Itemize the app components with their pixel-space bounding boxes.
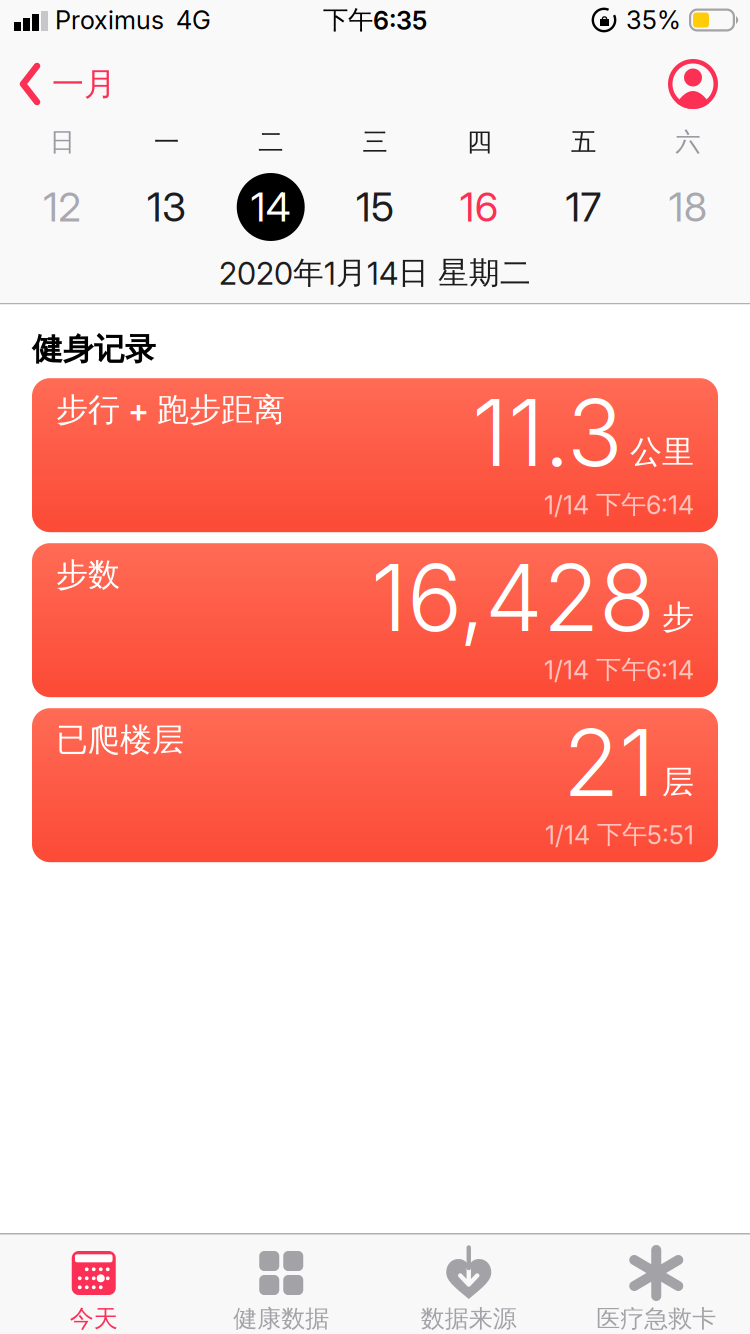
staticText: 数据来源 — [421, 1304, 517, 1333]
button[interactable]: 已爬楼层 — [32, 708, 718, 862]
button[interactable]: 医疗急救卡 — [562, 1233, 750, 1334]
staticText: 三 — [362, 126, 387, 157]
staticText: 五 — [571, 126, 596, 157]
button[interactable]: 步行 + 跑步距离 — [32, 378, 718, 532]
staticText: 下午6:35 — [323, 4, 427, 35]
staticText: 二 — [258, 126, 283, 157]
staticText: 14 — [251, 183, 291, 231]
staticText: 六 — [675, 126, 700, 157]
staticText: 13 — [147, 183, 186, 231]
staticText: 15 — [356, 183, 394, 231]
staticText: 层 — [662, 762, 694, 802]
button[interactable]: 数据来源 — [375, 1233, 562, 1334]
staticText: 步数 — [56, 555, 120, 594]
button[interactable]: 14 — [219, 165, 323, 249]
button[interactable] — [668, 59, 750, 109]
button[interactable]: 12 — [10, 165, 114, 249]
staticText: 1/14 下午6:14 — [544, 654, 694, 685]
button[interactable]: 健康数据 — [187, 1233, 375, 1334]
staticText: 1/14 下午5:51 — [545, 819, 694, 850]
staticText: 一 — [154, 126, 179, 157]
staticText: 17 — [566, 183, 602, 231]
staticText: 12 — [43, 183, 81, 231]
staticText: 21 — [563, 708, 655, 817]
button[interactable]: 步数 — [32, 543, 718, 697]
staticText: 11.3 — [472, 378, 623, 487]
staticText: 16 — [460, 183, 499, 231]
staticText: 步行 + 跑步距离 — [56, 390, 285, 429]
staticText: 今天 — [70, 1304, 118, 1333]
staticText: 16,428 — [371, 543, 655, 652]
staticText: 步 — [662, 597, 694, 637]
staticText: 一月 — [52, 64, 116, 104]
staticText: Proximus — [55, 5, 164, 35]
staticText: 日 — [50, 126, 75, 157]
button[interactable]: 今天 — [0, 1233, 187, 1334]
staticText: 健身记录 — [32, 330, 156, 368]
staticText: 2020年1月14日 星期二 — [219, 254, 531, 292]
staticText: 医疗急救卡 — [596, 1304, 716, 1333]
staticText: 18 — [669, 183, 707, 231]
staticText: 健康数据 — [233, 1304, 329, 1333]
button[interactable]: 17 — [531, 165, 636, 249]
button[interactable]: 一月 — [0, 64, 116, 104]
button[interactable]: 18 — [636, 165, 740, 249]
button[interactable]: 16 — [427, 165, 531, 249]
staticText: 4G — [176, 5, 211, 35]
staticText: 已爬楼层 — [56, 720, 184, 759]
staticText: 1/14 下午6:14 — [544, 489, 694, 520]
staticText: 四 — [467, 126, 492, 157]
button[interactable]: 13 — [114, 165, 219, 249]
staticText: 公里 — [630, 432, 694, 472]
button[interactable]: 15 — [323, 165, 427, 249]
staticText: 35% — [626, 5, 681, 35]
